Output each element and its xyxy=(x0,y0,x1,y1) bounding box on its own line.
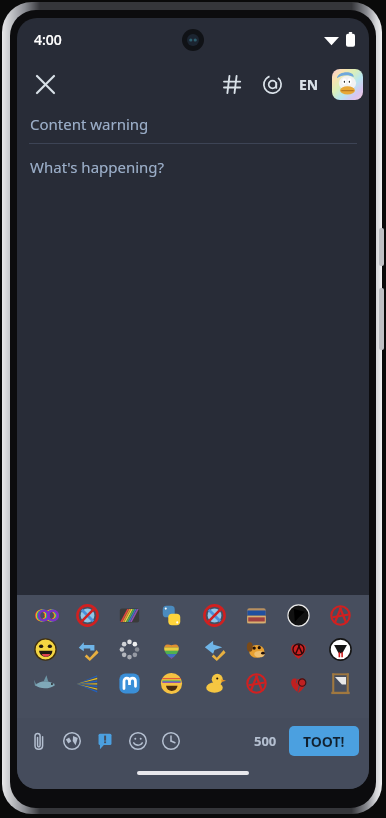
button[interactable]: EN xyxy=(293,67,325,101)
button[interactable]: Emoji 21 xyxy=(243,670,270,697)
button[interactable]: Emoji 3 xyxy=(158,602,185,629)
button[interactable]: Emoji 13 xyxy=(243,636,270,663)
button[interactable]: Emoji 5 xyxy=(243,602,270,629)
button[interactable]: Schedule xyxy=(154,724,187,757)
button[interactable]: Close xyxy=(25,64,65,104)
button[interactable]: Emoji 14 xyxy=(285,636,312,663)
button[interactable]: Emoji 1 xyxy=(74,602,101,629)
button[interactable]: TOOT! xyxy=(289,726,359,756)
button[interactable]: Emoji 18 xyxy=(116,670,143,697)
button[interactable]: Emoji 10 xyxy=(116,636,143,663)
button[interactable]: Emoji xyxy=(121,724,154,757)
button[interactable]: Emoji 7 xyxy=(327,602,354,629)
staticText: 4:00 xyxy=(34,30,62,49)
button[interactable]: Emoji 4 xyxy=(201,602,228,629)
button[interactable]: Emoji 16 xyxy=(32,670,59,697)
staticText: 500 xyxy=(254,732,277,750)
button[interactable]: Mention xyxy=(255,67,289,101)
button[interactable]: Emoji 23 xyxy=(327,670,354,697)
staticText: Content warning xyxy=(30,114,149,134)
button[interactable]: Emoji 8 xyxy=(32,636,59,663)
button[interactable]: Emoji 9 xyxy=(74,636,101,663)
button[interactable]: Language xyxy=(55,724,88,757)
staticText: EN xyxy=(299,75,319,94)
button[interactable]: Emoji 6 xyxy=(285,602,312,629)
button[interactable]: Emoji 22 xyxy=(285,670,312,697)
button[interactable]: Emoji 2 xyxy=(116,602,143,629)
staticText: What's happening? xyxy=(30,157,165,177)
button[interactable]: Emoji 0 xyxy=(32,602,59,629)
button[interactable]: Hashtag xyxy=(215,67,249,101)
button[interactable]: Emoji 12 xyxy=(201,636,228,663)
button[interactable]: Emoji 15 xyxy=(327,636,354,663)
button[interactable]: Emoji 19 xyxy=(158,670,185,697)
button[interactable]: Attach xyxy=(22,724,55,757)
button[interactable]: Emoji 20 xyxy=(201,670,228,697)
button[interactable]: Account xyxy=(332,69,363,100)
button[interactable]: Emoji 11 xyxy=(158,636,185,663)
button[interactable]: Content warning xyxy=(88,724,121,757)
button[interactable]: Emoji 17 xyxy=(74,670,101,697)
staticText: TOOT! xyxy=(303,732,345,751)
